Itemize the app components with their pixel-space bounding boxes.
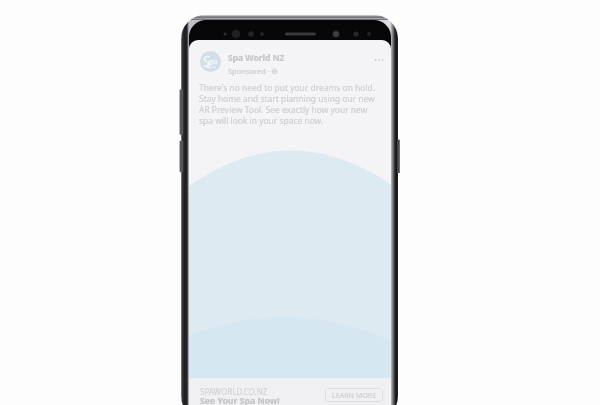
staticText: SPAWORLD.CO.NZ	[200, 386, 268, 397]
button[interactable]: More options	[371, 51, 389, 69]
button[interactable]: SPAWORLD.CO.NZ	[200, 386, 384, 405]
button[interactable]: Spa World NZ page	[200, 51, 221, 72]
button[interactable]: LEARN MORE	[325, 388, 383, 402]
staticText: See Your Spa Now!	[200, 395, 280, 405]
staticText: Spa World NZ	[228, 52, 285, 64]
staticText: LEARN MORE	[332, 390, 377, 400]
staticText: Sponsored ·	[228, 66, 272, 76]
staticText: There's no need to put your dreams on ho…	[199, 82, 376, 126]
button[interactable]: Spa World NZ page	[200, 48, 389, 74]
